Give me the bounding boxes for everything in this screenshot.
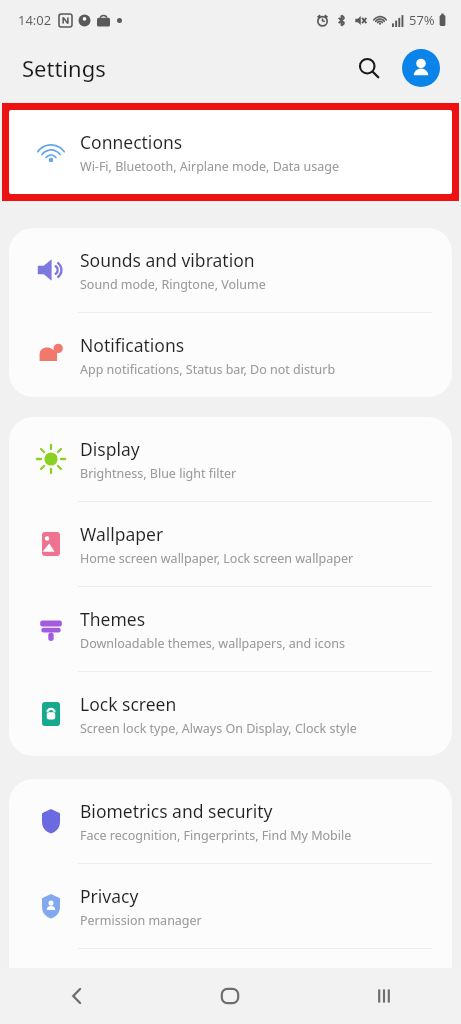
button[interactable]: Lock screen (9, 672, 452, 756)
staticText: Face recognition, Fingerprints, Find My … (80, 827, 352, 844)
staticText: App notifications, Status bar, Do not di… (80, 361, 336, 378)
staticText: Display (80, 437, 140, 461)
button[interactable]: Sounds and vibration (9, 228, 452, 312)
staticText: Home screen wallpaper, Lock screen wallp… (80, 550, 354, 567)
button[interactable]: Wallpaper (9, 502, 452, 586)
staticText: Screen lock type, Always On Display, Clo… (80, 720, 357, 737)
staticText: Biometrics and security (80, 799, 273, 823)
button[interactable]: Notifications (9, 313, 452, 397)
staticText: Notifications (80, 333, 185, 357)
staticText: Themes (80, 607, 146, 631)
button[interactable]: Recent apps (307, 968, 461, 1024)
staticText: Connections (80, 130, 183, 154)
button[interactable]: Themes (9, 587, 452, 671)
staticText: Sound mode, Ringtone, Volume (80, 276, 266, 293)
staticText: 57% (409, 11, 435, 29)
button[interactable]: Connections (9, 110, 452, 194)
button[interactable]: Display (9, 417, 452, 501)
staticText: Downloadable themes, wallpapers, and ico… (80, 635, 345, 652)
staticText: Brightness, Blue light filter (80, 465, 237, 482)
button[interactable]: Search (349, 48, 389, 88)
button[interactable]: Privacy (9, 864, 452, 948)
staticText: Wallpaper (80, 522, 164, 546)
staticText: Privacy (80, 884, 139, 908)
staticText: Permission manager (80, 912, 202, 929)
staticText: Lock screen (80, 692, 177, 716)
staticText: Sounds and vibration (80, 248, 255, 272)
button[interactable]: Back (0, 968, 153, 1024)
button[interactable]: Account (402, 49, 440, 87)
staticText: Location (80, 975, 151, 999)
button[interactable]: Location (9, 949, 452, 1024)
staticText: Settings (22, 53, 106, 83)
button[interactable]: Home (153, 968, 307, 1024)
staticText: Wi-Fi, Bluetooth, Airplane mode, Data us… (80, 158, 340, 175)
button[interactable]: Biometrics and security (9, 779, 452, 863)
staticText: 14:02 (18, 11, 52, 29)
